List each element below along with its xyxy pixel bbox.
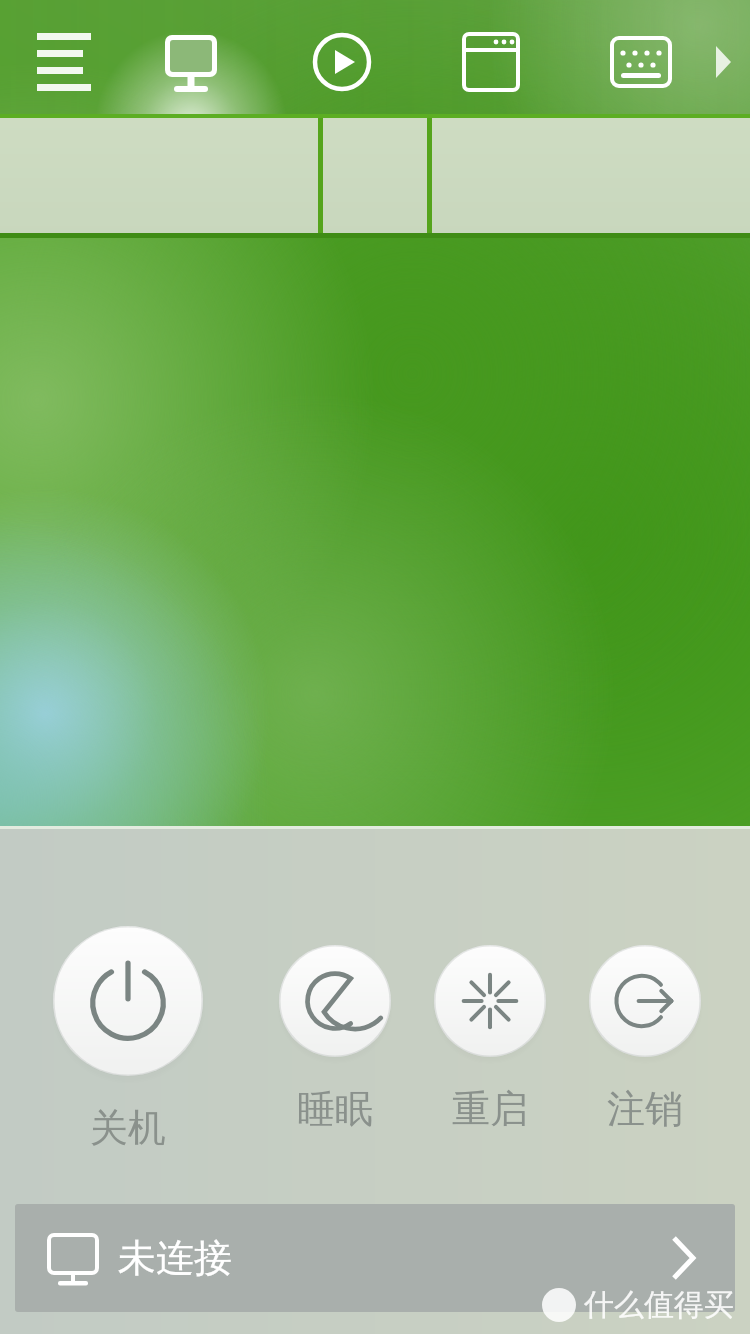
button[interactable]: Window preview 3: [432, 118, 750, 238]
staticText: 关机: [90, 1104, 166, 1152]
staticText: 未连接: [118, 1234, 232, 1282]
button[interactable]: Window: [451, 22, 531, 102]
button[interactable]: Window preview 1: [0, 118, 318, 238]
button[interactable]: Display: [151, 22, 231, 102]
button[interactable]: Restart: [434, 945, 546, 1149]
button[interactable]: Sleep: [279, 945, 391, 1149]
staticText: 什么值得买: [584, 1286, 734, 1324]
staticText: 睡眠: [297, 1085, 373, 1133]
button[interactable]: Shut down: [53, 926, 203, 1168]
button[interactable]: Sign out: [589, 945, 701, 1149]
staticText: 注销: [607, 1085, 683, 1133]
button[interactable]: Keyboard: [601, 22, 681, 102]
button[interactable]: Menu: [24, 22, 104, 102]
button[interactable]: Media: [302, 22, 382, 102]
button[interactable]: More: [682, 22, 750, 102]
staticText: 重启: [452, 1085, 528, 1133]
button[interactable]: 未连接: [15, 1204, 735, 1312]
button[interactable]: Window preview 2: [323, 118, 427, 238]
